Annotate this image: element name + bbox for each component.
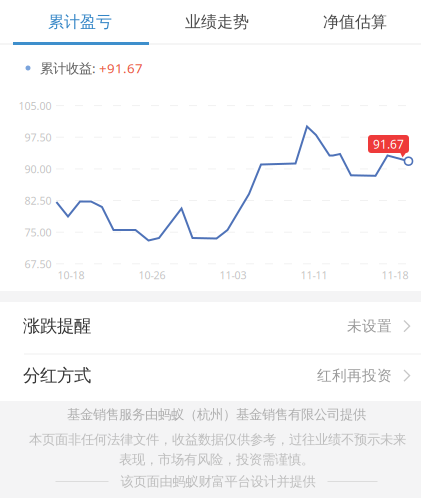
staticText: 红利再投资 — [317, 366, 392, 384]
staticText: 表现，市场有风险，投资需谨慎。 — [119, 451, 314, 468]
button[interactable]: 净值估算 — [289, 1, 421, 43]
staticText: 11-11 — [300, 268, 327, 282]
staticText: 未设置 — [347, 317, 392, 335]
staticText: 75.00 — [24, 225, 51, 239]
staticText: 该页面由蚂蚁财富平台设计并提供 — [120, 473, 315, 490]
staticText: 90.00 — [24, 162, 51, 176]
staticText: 10-18 — [57, 268, 84, 282]
staticText: 10-26 — [138, 268, 165, 282]
staticText: 本页面非任何法律文件，收益数据仅供参考，过往业绩不预示未来 — [29, 431, 406, 448]
staticText: 业绩走势 — [185, 12, 249, 32]
staticText: 累计收益: — [40, 59, 99, 77]
staticText: 82.50 — [24, 194, 51, 208]
button[interactable]: 业绩走势 — [151, 1, 283, 43]
staticText: 11-03 — [219, 268, 246, 282]
staticText: 91.67 — [373, 136, 404, 152]
staticText: 基金销售服务由蚂蚁（杭州）基金销售有限公司提供 — [67, 406, 366, 423]
button[interactable]: 涨跌提醒 — [0, 302, 421, 350]
staticText: 净值估算 — [323, 12, 387, 32]
button[interactable]: 累计盈亏 — [14, 1, 146, 43]
staticText: 97.50 — [24, 130, 51, 144]
staticText: 67.50 — [24, 257, 51, 271]
staticText: 累计盈亏 — [48, 12, 112, 32]
button[interactable]: 分红方式 — [0, 351, 421, 399]
staticText: 涨跌提醒 — [23, 315, 91, 337]
staticText: 11-18 — [381, 268, 408, 282]
staticText: +91.67 — [99, 59, 143, 77]
staticText: 分红方式 — [23, 365, 91, 386]
staticText: 105.00 — [18, 99, 51, 113]
